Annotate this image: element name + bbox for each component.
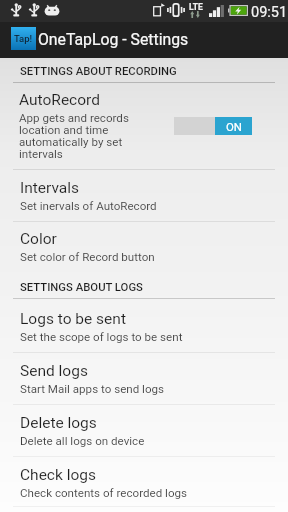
- staticText: OneTapLog - Settings: [38, 30, 189, 49]
- button[interactable]: Color: [0, 222, 288, 273]
- button[interactable]: Delete logs: [0, 405, 288, 457]
- button[interactable]: AutoRecord switch, on: [174, 117, 252, 135]
- button[interactable]: Logs to be sent: [0, 299, 288, 353]
- staticText: ON: [226, 120, 242, 133]
- button[interactable]: Intervals: [0, 170, 288, 222]
- button[interactable]: AutoRecord: [0, 83, 288, 170]
- button[interactable]: Check logs: [0, 457, 288, 507]
- staticText: Set the scope of logs to be sent: [20, 330, 183, 344]
- staticText: Check logs: [20, 466, 96, 484]
- staticText: App gets and records location and time a…: [19, 111, 161, 161]
- staticText: AutoRecord: [19, 91, 100, 109]
- staticText: Set inervals of AutoRecord: [20, 199, 157, 213]
- staticText: Set color of Record button: [20, 250, 155, 264]
- button[interactable]: Send logs: [0, 353, 288, 405]
- button[interactable]: OneTapLog app icon: [11, 27, 36, 50]
- staticText: SETTINGS ABOUT LOGS: [20, 281, 143, 294]
- staticText: Send logs: [20, 362, 88, 380]
- staticText: LTE: [189, 2, 203, 12]
- staticText: 09:51: [251, 4, 288, 21]
- staticText: Intervals: [20, 179, 80, 197]
- staticText: SETTINGS ABOUT RECORDING: [20, 65, 177, 78]
- staticText: Delete all logs on device: [20, 434, 145, 448]
- staticText: Tap!: [14, 33, 33, 44]
- staticText: Logs to be sent: [20, 310, 126, 328]
- staticText: Delete logs: [20, 414, 97, 432]
- staticText: Check contents of recorded logs: [20, 486, 187, 500]
- staticText: Color: [20, 230, 57, 248]
- staticText: Start Mail apps to send logs: [20, 382, 165, 396]
